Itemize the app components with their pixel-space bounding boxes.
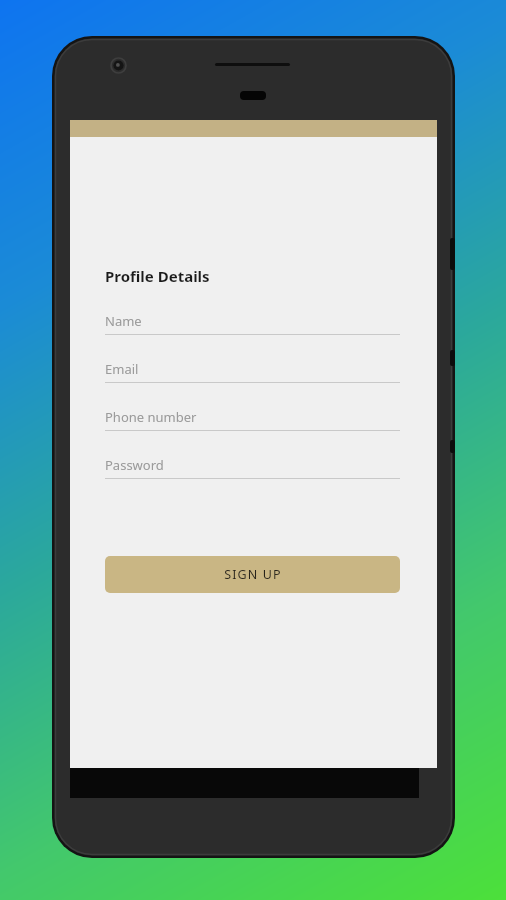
staticText: Profile Details [105,266,210,286]
button[interactable]: Email [105,355,400,403]
staticText: Password [105,456,164,474]
staticText: Name [105,312,142,330]
button[interactable]: Phone number [105,403,400,451]
button[interactable]: Password [105,451,400,499]
button[interactable]: Name [105,307,400,355]
staticText: Email [105,360,139,378]
staticText: Phone number [105,408,197,426]
staticText: SIGN UP [224,566,282,583]
button[interactable]: SIGN UP [105,556,400,593]
